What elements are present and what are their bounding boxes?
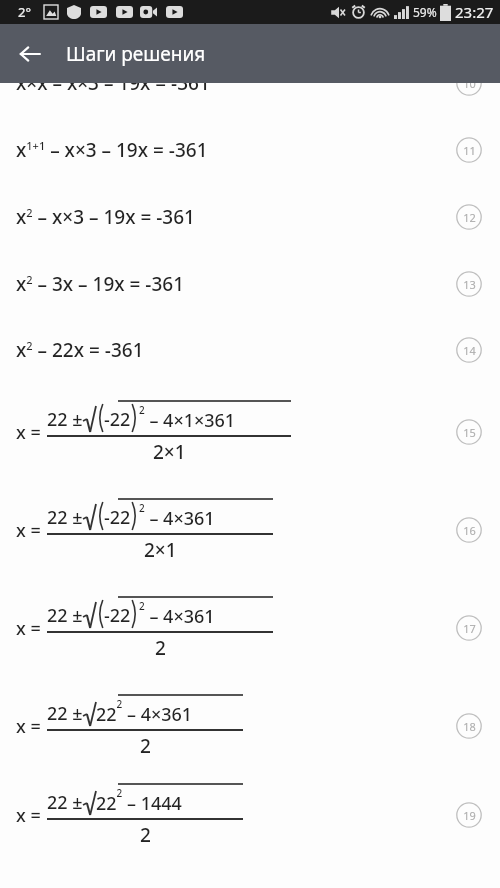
button[interactable]: Step 17 <box>456 615 482 641</box>
staticText: 22 ± <box>47 407 83 432</box>
staticText: Шаги решения <box>66 41 206 67</box>
staticText: 22 ± <box>47 790 83 815</box>
staticText: 2 <box>140 733 151 759</box>
button[interactable]: x = <box>0 677 500 775</box>
staticText: x2 – 22x = -361 <box>16 337 144 363</box>
staticText: x = <box>16 714 41 739</box>
button[interactable]: Step 13 <box>456 271 482 297</box>
staticText: 13 <box>463 277 476 292</box>
staticText: x = <box>16 803 41 828</box>
staticText: 22 ± <box>47 505 83 530</box>
staticText: 2° <box>18 3 31 21</box>
staticText: 11 <box>463 143 476 158</box>
staticText: x1+1 – x×3 – 19x = -361 <box>16 137 208 163</box>
staticText: -22 <box>104 407 131 432</box>
staticText: 16 <box>463 523 476 538</box>
button[interactable]: Step 11 <box>456 137 482 163</box>
button[interactable]: Step 16 <box>456 517 482 543</box>
staticText: 59% <box>413 4 437 20</box>
staticText: x = <box>16 420 41 445</box>
button[interactable]: x2 – 3x – 19x = -361 <box>0 250 500 317</box>
staticText: 2 – 4×361 <box>139 501 215 530</box>
button[interactable]: Step 14 <box>456 337 482 363</box>
staticText: 222 – 4×361 <box>96 697 193 726</box>
staticText: 2×1 <box>153 439 186 465</box>
staticText: x×x – x×3 – 19x = -361 <box>16 83 210 96</box>
staticText: 2 – 4×361 <box>139 599 215 628</box>
button[interactable]: Back <box>8 32 52 76</box>
staticText: x2 – 3x – 19x = -361 <box>16 271 185 297</box>
button[interactable]: Step 18 <box>456 713 482 739</box>
staticText: 2 <box>140 822 151 848</box>
staticText: 18 <box>463 719 476 734</box>
button[interactable]: Step 19 <box>456 802 482 828</box>
staticText: 17 <box>463 621 476 636</box>
button[interactable]: x = <box>0 383 500 481</box>
button[interactable]: Step 12 <box>456 204 482 230</box>
staticText: -22 <box>104 603 131 628</box>
button[interactable]: Step 10 <box>456 83 482 96</box>
staticText: 14 <box>463 343 476 358</box>
staticText: 12 <box>463 210 476 225</box>
button[interactable]: x = <box>0 481 500 579</box>
staticText: 2×1 <box>144 537 177 563</box>
button[interactable]: x×x – x×3 – 19x = -361 <box>0 83 500 116</box>
staticText: x = <box>16 616 41 641</box>
staticText: 22 ± <box>47 603 83 628</box>
staticText: 19 <box>463 808 476 823</box>
staticText: 15 <box>463 425 476 440</box>
button[interactable]: x1+1 – x×3 – 19x = -361 <box>0 116 500 183</box>
staticText: 22 ± <box>47 701 83 726</box>
button[interactable]: x2 – x×3 – 19x = -361 <box>0 183 500 250</box>
staticText: x2 – x×3 – 19x = -361 <box>16 204 195 230</box>
staticText: 222 – 1444 <box>96 786 182 815</box>
staticText: 2 <box>155 635 166 661</box>
staticText: -22 <box>104 505 131 530</box>
button[interactable]: x2 – 22x = -361 <box>0 317 500 383</box>
button[interactable]: x = <box>0 775 500 855</box>
button[interactable]: x = <box>0 579 500 677</box>
staticText: x = <box>16 518 41 543</box>
staticText: 23:27 <box>455 2 494 22</box>
staticText: 2 – 4×1×361 <box>139 403 236 432</box>
staticText: 10 <box>463 83 476 91</box>
button[interactable]: Step 15 <box>456 419 482 445</box>
